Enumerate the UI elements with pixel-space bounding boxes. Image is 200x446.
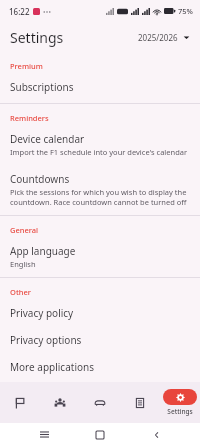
button[interactable]: 2025/2026 [136, 29, 192, 46]
button[interactable]: App language [0, 237, 200, 271]
staticText: Device calendar [10, 132, 85, 146]
staticText: More applications [10, 360, 94, 374]
button[interactable]: Drivers [40, 382, 80, 423]
staticText: Pick the sessions for which you wish to … [10, 187, 190, 207]
staticText: Other [10, 287, 31, 297]
staticText: Reminders [10, 113, 49, 123]
staticText: 16:22 [9, 6, 30, 17]
staticText: English [10, 259, 36, 269]
staticText: Import the F1 schedule into your device'… [10, 147, 188, 157]
staticText: General [10, 225, 39, 235]
button[interactable]: Privacy options [0, 326, 200, 349]
staticText: 2025/2026 [138, 32, 178, 43]
staticText: Privacy policy [10, 306, 74, 320]
staticText: Settings [167, 407, 193, 416]
staticText: Countdowns [10, 172, 70, 186]
button[interactable]: Cars [80, 382, 120, 423]
button[interactable]: Device calendar [0, 125, 200, 159]
button[interactable]: News [120, 382, 160, 423]
button[interactable]: Recents [31, 423, 57, 446]
button[interactable]: Countdowns [0, 165, 200, 209]
staticText: Premium [10, 61, 43, 71]
button[interactable]: Back [144, 423, 170, 446]
staticText: App language [10, 244, 76, 258]
button[interactable]: Home [87, 423, 113, 446]
button[interactable]: More applications [0, 353, 200, 376]
button[interactable]: Settings [160, 382, 200, 423]
button[interactable]: Subscriptions [0, 73, 200, 96]
staticText: Privacy options [10, 333, 82, 347]
staticText: Settings [10, 28, 64, 47]
button[interactable]: Flag [0, 382, 40, 423]
staticText: Subscriptions [10, 80, 74, 94]
staticText: 75% [178, 6, 193, 16]
button[interactable]: Privacy policy [0, 299, 200, 322]
